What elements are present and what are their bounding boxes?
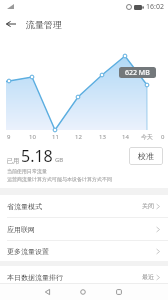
button[interactable]: Recents — [109, 286, 129, 297]
staticText: 流量管理 — [26, 19, 62, 30]
staticText: 10 — [29, 133, 36, 141]
staticText: 本日数据流量排行 — [7, 273, 63, 282]
button[interactable]: 应用联网 — [0, 218, 168, 240]
staticText: 已用 — [7, 157, 19, 165]
staticText: 0 — [161, 133, 165, 141]
staticText: 省流量模式 — [7, 202, 42, 211]
staticText: 关闭 — [142, 202, 154, 210]
button[interactable]: Home — [73, 286, 93, 297]
staticText: 运营商流量计算方式可能与本设备计算方式不同 — [7, 176, 112, 182]
button[interactable]: Back — [0, 13, 22, 35]
staticText: 12 — [75, 133, 82, 141]
staticText: 今天 — [141, 133, 153, 141]
button[interactable]: 更多流量设置 — [0, 241, 168, 261]
staticText: 更多流量设置 — [7, 247, 49, 256]
staticText: 最近 — [142, 273, 154, 281]
button[interactable]: 校准 — [129, 147, 163, 165]
staticText: 应用联网 — [7, 225, 35, 234]
staticText: 622 MB — [125, 68, 150, 78]
button[interactable]: Back — [37, 286, 57, 297]
staticText: 11 — [52, 133, 59, 141]
staticText: 16:02 — [146, 2, 164, 12]
button[interactable]: 省流量模式 — [0, 195, 168, 217]
staticText: 当前使用日常流量 — [7, 168, 47, 174]
staticText: 9 — [7, 133, 11, 141]
staticText: 13 — [99, 133, 106, 141]
staticText: GB — [55, 156, 64, 164]
staticText: 14 — [122, 133, 129, 141]
staticText: 校准 — [138, 151, 154, 161]
staticText: 5.18 — [21, 145, 53, 167]
button[interactable]: 本日数据流量排行 — [0, 266, 168, 288]
